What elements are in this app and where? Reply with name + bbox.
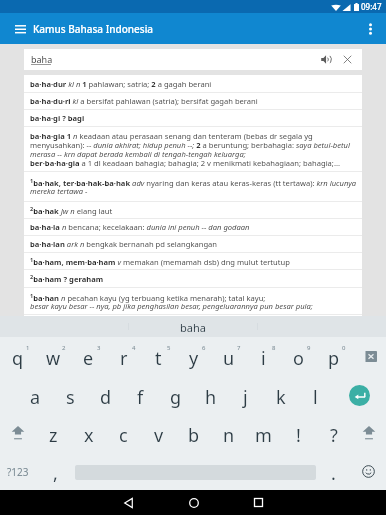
button[interactable]: 2ba·hak Jw n elang laut <box>24 202 362 218</box>
staticText: ! <box>296 423 301 448</box>
button[interactable]: j <box>228 376 263 414</box>
button[interactable]: ?123 <box>0 452 36 490</box>
button[interactable]: Recent apps <box>226 490 291 515</box>
staticText: baha <box>180 320 206 335</box>
staticText: ba·ha·du·ri kl a bersifat pahlawan (satr… <box>30 96 258 106</box>
button[interactable]: Delete <box>351 337 386 376</box>
button[interactable]: 1ba·hak, ter·ba·hak-ba·hak adv nyaring d… <box>24 172 362 201</box>
button[interactable]: ba·ha·gia 1 n keadaan atau perasaan sena… <box>24 127 362 171</box>
button[interactable]: g <box>158 376 193 414</box>
staticText: 1ba·ham, mem·ba·ham v memakan (memamah d… <box>30 256 290 267</box>
staticText: n <box>223 423 235 448</box>
button[interactable]: 2 <box>36 337 71 376</box>
staticText: h <box>205 385 217 410</box>
button[interactable]: ba·ha·du·ri kl a bersifat pahlawan (satr… <box>24 93 362 109</box>
staticText: g <box>170 385 182 410</box>
staticText: z <box>49 423 58 448</box>
button[interactable]: 0 <box>316 337 351 376</box>
staticText: 1 <box>26 344 30 352</box>
button[interactable]: 8 <box>246 337 281 376</box>
button[interactable]: ! <box>281 414 316 452</box>
staticText: x <box>84 423 94 448</box>
button[interactable]: Emoji <box>351 452 386 490</box>
button[interactable]: ba·ha·lan ark n bengkak bernanah pd sela… <box>24 236 362 252</box>
button[interactable]: 4 <box>106 337 141 376</box>
button[interactable]: 1ba·ham, mem·ba·ham v memakan (memamah d… <box>24 253 362 269</box>
button[interactable]: baha <box>129 316 257 337</box>
button[interactable]: , <box>36 452 75 490</box>
staticText: 2 <box>62 344 66 352</box>
button[interactable]: 9 <box>281 337 316 376</box>
button[interactable]: Speak <box>316 49 337 70</box>
button[interactable]: Back <box>96 490 161 515</box>
staticText: 2ba·ham ? geraham <box>30 273 104 284</box>
button[interactable]: d <box>88 376 123 414</box>
staticText: f <box>137 385 144 410</box>
staticText: 9 <box>307 344 311 352</box>
button[interactable]: . <box>316 452 351 490</box>
button[interactable]: ? <box>316 414 351 452</box>
staticText: ba·ha·gia 1 n keadaan atau perasaan sena… <box>30 131 357 168</box>
staticText: r <box>120 346 128 371</box>
staticText: 8 <box>272 344 276 352</box>
button[interactable]: a <box>18 376 53 414</box>
staticText: o <box>293 346 304 371</box>
staticText: ? <box>330 423 338 448</box>
staticText: p <box>328 346 340 371</box>
button[interactable]: m <box>246 414 281 452</box>
button[interactable]: n <box>211 414 246 452</box>
button[interactable]: More options <box>355 13 386 44</box>
button[interactable]: Space <box>75 452 316 490</box>
staticText: s <box>66 385 75 410</box>
button[interactable]: s <box>53 376 88 414</box>
button[interactable]: Enter <box>333 376 386 414</box>
button[interactable]: 1ba·han n pecahan kayu (yg terbuang keti… <box>24 288 362 314</box>
staticText: ba·ha·la n bencana; kecelakaan: dunia in… <box>30 222 250 232</box>
button[interactable]: x <box>71 414 106 452</box>
staticText: 2ba·hak Jw n elang laut <box>30 205 113 216</box>
staticText: ?123 <box>7 465 29 479</box>
button[interactable]: f <box>123 376 158 414</box>
button[interactable]: b <box>176 414 211 452</box>
staticText: . <box>331 461 336 486</box>
button[interactable]: ba·ha·gi ? bagi <box>24 110 362 126</box>
button[interactable]: k <box>263 376 298 414</box>
button[interactable]: c <box>106 414 141 452</box>
staticText: baha <box>31 53 53 65</box>
staticText: ba·ha·dur kl n 1 pahlawan; satria; 2 a g… <box>30 79 212 89</box>
button[interactable]: Shift <box>0 414 36 452</box>
button[interactable]: Home <box>161 490 226 515</box>
staticText: i <box>261 346 266 371</box>
staticText: e <box>83 346 94 371</box>
button[interactable]: Open navigation drawer <box>0 13 40 44</box>
button[interactable]: 6 <box>176 337 211 376</box>
button[interactable]: 7 <box>211 337 246 376</box>
button[interactable]: 1 <box>0 337 36 376</box>
staticText: a <box>30 385 41 410</box>
staticText: 5 <box>167 344 171 352</box>
staticText: 0 <box>342 344 346 352</box>
button[interactable]: 5 <box>141 337 176 376</box>
button[interactable]: ba·ha·dur kl n 1 pahlawan; satria; 2 a g… <box>24 75 362 92</box>
button[interactable]: 2ba·ham ? geraham <box>24 270 362 287</box>
button[interactable]: z <box>36 414 71 452</box>
staticText: w <box>46 346 61 371</box>
button[interactable]: 3 <box>71 337 106 376</box>
button[interactable]: Shift <box>351 414 386 452</box>
button[interactable]: Clear text <box>337 49 358 70</box>
staticText: Kamus Bahasa Indonesia <box>33 22 154 36</box>
staticText: j <box>243 385 248 410</box>
button[interactable]: ba·ha·la n bencana; kecelakaan: dunia in… <box>24 219 362 235</box>
staticText: 1ba·han n pecahan kayu (yg terbuang keti… <box>30 292 313 311</box>
staticText: v <box>154 423 164 448</box>
staticText: 09:47 <box>361 1 382 12</box>
staticText: k <box>276 385 286 410</box>
button[interactable]: h <box>193 376 228 414</box>
staticText: , <box>53 461 58 486</box>
button[interactable]: v <box>141 414 176 452</box>
button[interactable]: l <box>298 376 333 414</box>
staticText: 6 <box>202 344 206 352</box>
staticText: ba·ha·gi ? bagi <box>30 113 85 123</box>
